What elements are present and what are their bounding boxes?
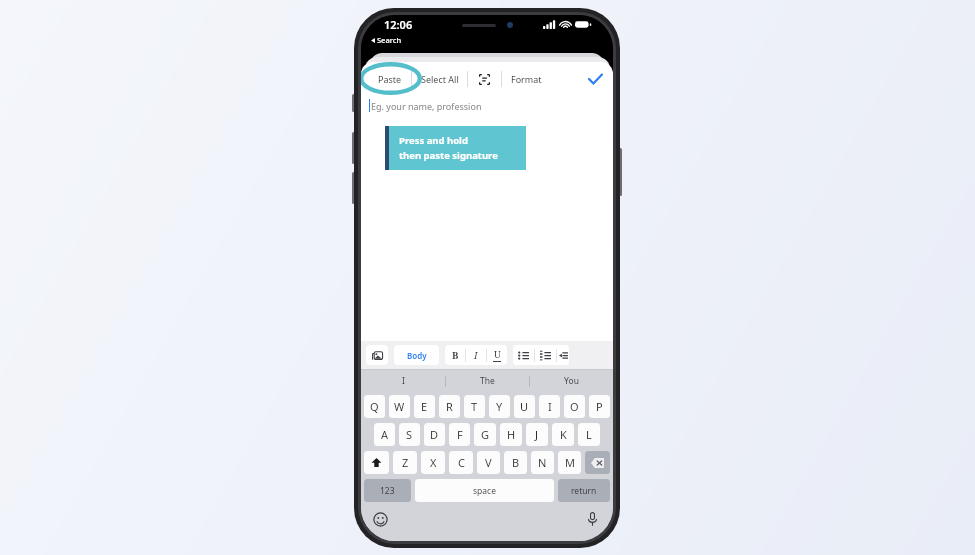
button[interactable]: E (414, 395, 435, 418)
button[interactable]: M (558, 451, 581, 474)
button[interactable]: Select All (412, 66, 467, 92)
button[interactable]: V (477, 451, 500, 474)
button[interactable]: O (564, 395, 585, 418)
button[interactable]: Numbered list (535, 345, 556, 365)
button[interactable]: D (424, 423, 445, 446)
staticText: I (548, 399, 552, 414)
button[interactable]: L (578, 423, 600, 446)
button[interactable]: R (439, 395, 460, 418)
staticText: return (571, 485, 597, 497)
button[interactable]: Dictate (583, 510, 601, 528)
staticText: F (457, 427, 463, 442)
staticText: O (570, 399, 579, 414)
button[interactable]: return (558, 479, 610, 502)
button[interactable]: 123 (364, 479, 411, 502)
button[interactable]: I (466, 345, 486, 365)
button[interactable]: Body (394, 345, 439, 365)
staticText: The (480, 375, 495, 387)
button[interactable]: I (361, 370, 445, 392)
button[interactable]: Emoji (371, 510, 389, 528)
button[interactable]: T (464, 395, 485, 418)
staticText: V (485, 455, 492, 470)
button[interactable]: K (552, 423, 574, 446)
button[interactable]: Backspace (585, 451, 610, 474)
staticText: D (430, 427, 439, 442)
staticText: B (452, 349, 459, 362)
button[interactable]: P (589, 395, 610, 418)
button[interactable]: C (449, 451, 473, 474)
staticText: Format (511, 73, 542, 85)
button[interactable]: U (487, 345, 507, 365)
staticText: Press and hold (399, 134, 468, 147)
staticText: Eg. your name, profession (371, 100, 482, 112)
staticText: C (458, 455, 465, 470)
staticText: G (481, 427, 490, 442)
button[interactable]: Scan text (468, 66, 501, 92)
staticText: L (586, 427, 592, 442)
staticText: K (560, 427, 567, 442)
staticText: 12:06 (384, 17, 413, 32)
staticText: P (596, 399, 603, 414)
staticText: W (394, 399, 405, 414)
button[interactable]: Done (584, 68, 606, 90)
staticText: B (512, 455, 520, 470)
staticText: X (430, 455, 437, 470)
button[interactable]: Y (489, 395, 510, 418)
staticText: 123 (380, 485, 395, 497)
button[interactable]: Format (502, 66, 551, 92)
staticText: Select All (421, 73, 459, 85)
button[interactable]: Q (364, 395, 385, 418)
button[interactable]: U (514, 395, 535, 418)
button[interactable]: The (446, 370, 529, 392)
staticText: N (538, 455, 547, 470)
button[interactable]: S (399, 423, 420, 446)
staticText: Body (407, 350, 427, 361)
staticText: M (565, 455, 575, 470)
staticText: Y (496, 399, 503, 414)
staticText: Paste (378, 73, 402, 85)
staticText: J (535, 427, 539, 442)
button[interactable]: You (530, 370, 613, 392)
button[interactable]: Insert image (366, 345, 388, 365)
button[interactable]: J (526, 423, 548, 446)
staticText: I (474, 349, 478, 362)
staticText: E (421, 399, 428, 414)
button[interactable]: Z (393, 451, 417, 474)
staticText: You (564, 375, 579, 387)
button[interactable]: N (531, 451, 554, 474)
staticText: A (381, 427, 389, 442)
button[interactable]: Paste (368, 66, 411, 92)
staticText: space (473, 485, 496, 497)
staticText: Z (402, 455, 409, 470)
button[interactable]: B (504, 451, 527, 474)
button[interactable]: W (389, 395, 410, 418)
button[interactable]: space (415, 479, 554, 502)
button[interactable]: G (474, 423, 496, 446)
button[interactable]: Bulleted list (513, 345, 534, 365)
button[interactable]: H (500, 423, 522, 446)
button[interactable]: A (374, 423, 395, 446)
button[interactable]: X (421, 451, 445, 474)
staticText: U (520, 399, 529, 414)
button[interactable]: I (539, 395, 560, 418)
staticText: U (494, 348, 501, 361)
button[interactable]: Outdent (557, 345, 569, 365)
staticText: S (406, 427, 413, 442)
button[interactable]: Search (369, 34, 404, 46)
staticText: R (446, 399, 453, 414)
staticText: Q (370, 399, 379, 414)
staticText: I (402, 375, 405, 387)
button[interactable]: B (445, 345, 465, 365)
staticText: T (471, 399, 478, 414)
staticText: Search (377, 35, 402, 45)
button[interactable]: F (449, 423, 470, 446)
button[interactable]: Shift (364, 451, 389, 474)
staticText: H (507, 427, 516, 442)
staticText: then paste signature (399, 149, 498, 162)
